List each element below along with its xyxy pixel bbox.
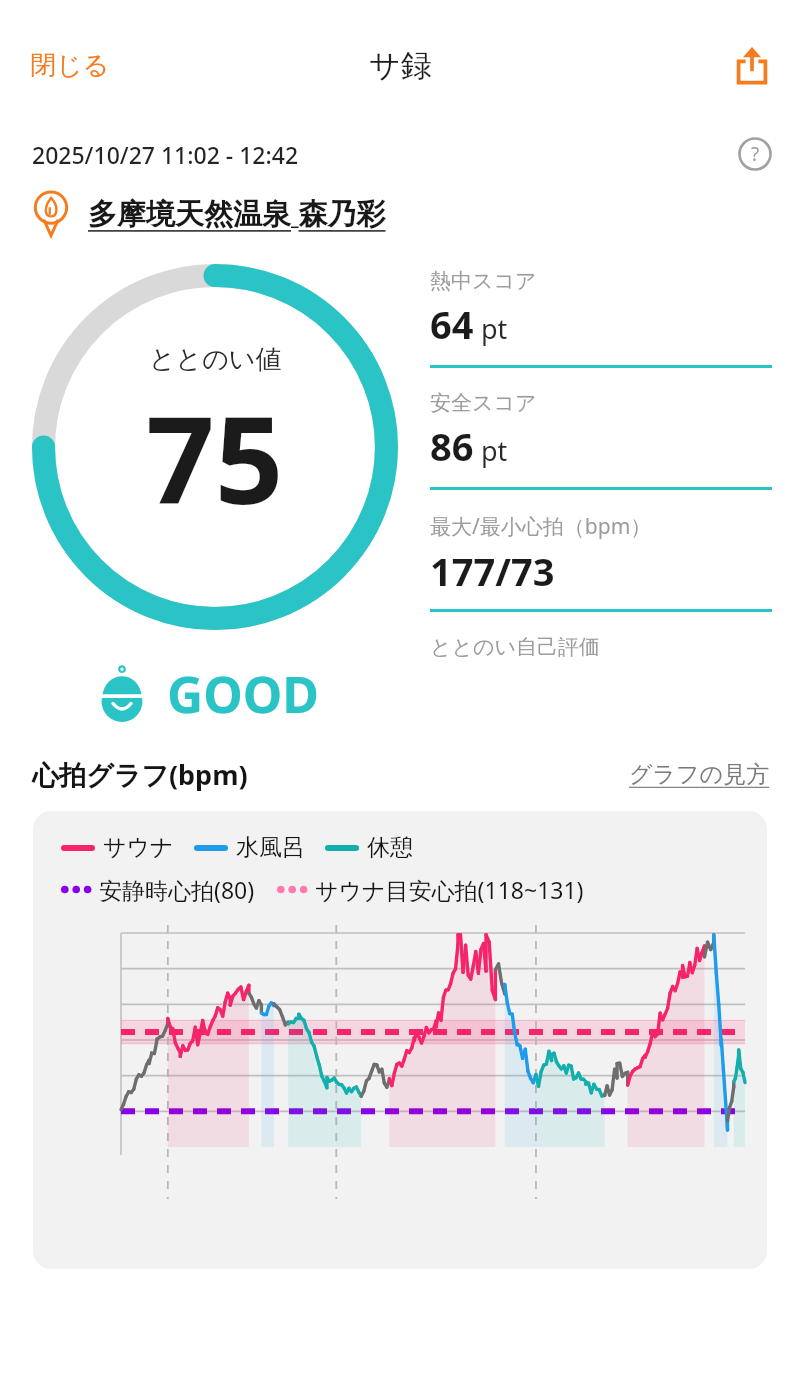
button[interactable]: 多摩境天然温泉 森乃彩: [0, 186, 800, 240]
staticText: GOOD: [167, 660, 319, 728]
staticText: 86: [430, 420, 474, 472]
button[interactable]: ととのい自己評価: [430, 626, 772, 660]
button[interactable]: 安全スコア: [430, 382, 772, 504]
staticText: サウナ: [103, 833, 174, 862]
staticText: 2025/10/27 11:02 - 12:42: [32, 139, 299, 170]
staticText: 熱中スコア: [430, 268, 537, 294]
staticText: 休憩: [367, 833, 413, 862]
staticText: 心拍グラフ(bpm): [32, 756, 248, 793]
staticText: 多摩境天然温泉 森乃彩: [88, 193, 386, 233]
staticText: サ録: [369, 46, 432, 85]
staticText: 177/73: [430, 545, 555, 597]
staticText: 閉じる: [30, 49, 110, 82]
staticText: 安静時心拍(80): [99, 874, 255, 905]
button[interactable]: 最大/最小心拍（bpm）: [430, 504, 772, 626]
button[interactable]: Share: [730, 43, 774, 87]
button[interactable]: Help: [738, 137, 772, 171]
staticText: ととのい自己評価: [430, 634, 600, 660]
staticText: サウナ目安心拍(118~131): [315, 874, 584, 905]
staticText: pt: [481, 310, 508, 347]
staticText: pt: [481, 432, 508, 469]
button[interactable]: グラフの見方: [629, 760, 770, 789]
staticText: ?: [751, 141, 760, 167]
staticText: 水風呂: [236, 833, 305, 862]
button[interactable]: 閉じる: [18, 39, 122, 92]
staticText: ととのい値: [149, 343, 282, 376]
staticText: 安全スコア: [430, 390, 537, 416]
staticText: グラフの見方: [629, 760, 770, 789]
button[interactable]: 熱中スコア: [430, 260, 772, 382]
staticText: 75: [146, 376, 284, 539]
staticText: 最大/最小心拍（bpm）: [430, 512, 652, 541]
staticText: 64: [430, 298, 474, 350]
